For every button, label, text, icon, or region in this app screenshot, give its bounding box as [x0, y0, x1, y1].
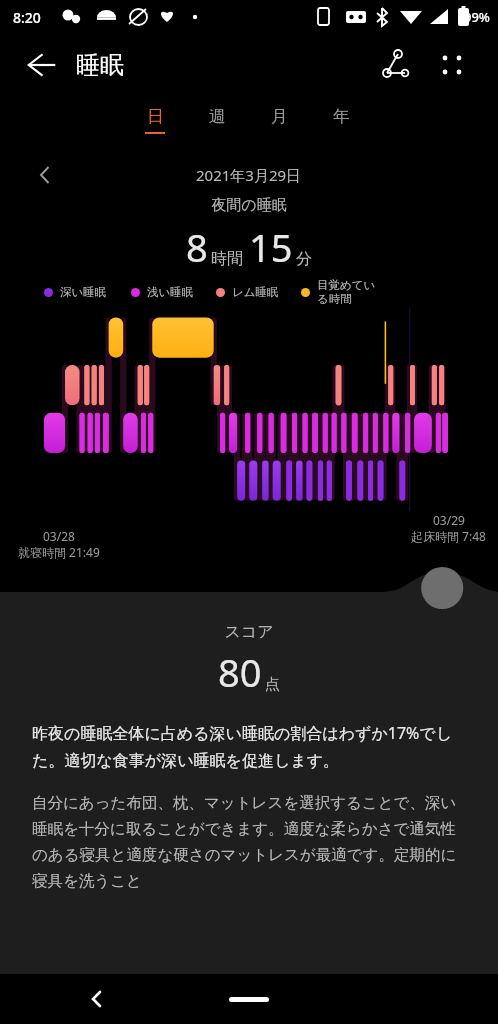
button[interactable]: 年 [330, 106, 352, 134]
staticText: 月 [271, 106, 288, 127]
staticText: 03/28 [43, 528, 75, 544]
button[interactable]: Previous day [30, 160, 60, 190]
staticText: 点 [265, 675, 280, 694]
staticText: 03/29 [433, 512, 465, 528]
button[interactable]: Home [229, 997, 269, 1002]
staticText: スコア [0, 622, 498, 642]
button[interactable]: 日 [144, 106, 166, 134]
staticText: 睡眠 [76, 50, 124, 80]
staticText: 80 [218, 646, 262, 698]
staticText: 日 [147, 106, 164, 127]
staticText: 時間 [211, 249, 243, 269]
staticText: る時間 [317, 292, 352, 306]
staticText: 8 [186, 221, 208, 273]
staticText: 年 [333, 106, 350, 127]
staticText: 99% [464, 8, 490, 26]
staticText: 深い睡眠 [60, 285, 107, 299]
staticText: 昨夜の睡眠全体に占める深い睡眠の割合はわずか17%でした。適切な食事が深い睡眠を… [32, 722, 466, 771]
staticText: 自分にあった布団、枕、マットレスを選択することで、深い睡眠を十分に取ることができ… [32, 793, 466, 891]
staticText: 目覚めてい [317, 278, 376, 292]
button[interactable]: 月 [268, 106, 290, 134]
button[interactable]: Share [376, 45, 416, 85]
staticText: レム睡眠 [232, 285, 279, 299]
staticText: 就寝時間 21:49 [18, 544, 100, 560]
staticText: 15 [249, 221, 293, 273]
button[interactable]: 週 [206, 106, 228, 134]
button[interactable]: Back [80, 983, 112, 1015]
staticText: 2021年3月29日 [196, 165, 302, 185]
staticText: 週 [209, 106, 226, 127]
staticText: 分 [296, 249, 312, 269]
staticText: 夜間の睡眠 [0, 196, 498, 215]
staticText: 起床時間 7:48 [411, 528, 486, 544]
staticText: 8:20 [13, 8, 41, 27]
button[interactable]: Back [24, 48, 58, 82]
button[interactable]: More options [432, 45, 472, 85]
staticText: 浅い睡眠 [147, 285, 194, 299]
